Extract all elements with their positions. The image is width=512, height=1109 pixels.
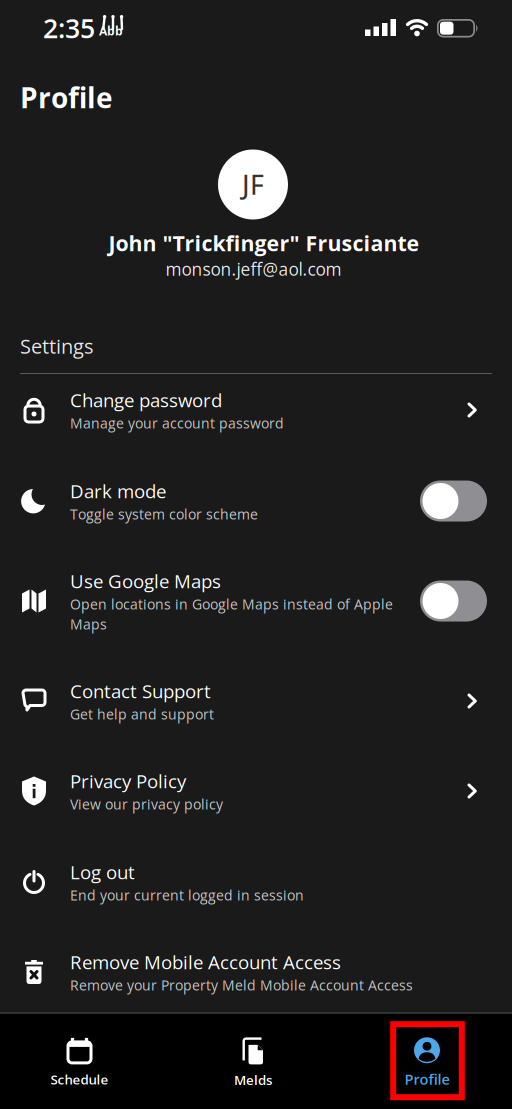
staticText: Remove your Property Meld Mobile Account… xyxy=(70,976,413,994)
button[interactable]: Melds xyxy=(234,1037,272,1089)
staticText: Open locations in Google Maps instead of… xyxy=(70,595,393,613)
staticText: Dark mode xyxy=(70,479,166,503)
staticText: Privacy Policy xyxy=(70,769,186,793)
staticText: Schedule xyxy=(50,1070,108,1088)
staticText: Contact Support xyxy=(70,679,211,703)
staticText: monson.jeff@aol.com xyxy=(165,257,341,280)
staticText: Profile xyxy=(20,79,113,116)
staticText: Profile xyxy=(404,1069,449,1089)
staticText: Get help and support xyxy=(70,705,214,723)
staticText: Melds xyxy=(234,1071,272,1089)
button[interactable]: Privacy Policy xyxy=(0,769,512,813)
staticText: JF xyxy=(242,167,264,202)
staticText: 2:35 xyxy=(43,10,95,46)
staticText: End your current logged in session xyxy=(70,886,304,904)
staticText: Abb xyxy=(99,23,123,39)
staticText: Manage your account password xyxy=(70,414,284,432)
staticText: Use Google Maps xyxy=(70,568,221,593)
staticText: Remove Mobile Account Access xyxy=(70,950,341,974)
staticText: Toggle system color scheme xyxy=(70,505,258,523)
button[interactable]: Log out xyxy=(0,860,512,904)
button[interactable]: Remove Mobile Account Access xyxy=(0,950,512,994)
button[interactable]: Change password xyxy=(0,388,512,432)
staticText: Maps xyxy=(70,615,107,633)
staticText: Settings xyxy=(20,333,94,359)
staticText: John "Trickfinger" Frusciante xyxy=(108,229,419,257)
staticText: Log out xyxy=(70,860,135,884)
button[interactable]: Use Google Maps switch xyxy=(420,580,487,621)
button[interactable]: Contact Support xyxy=(0,679,512,723)
button[interactable]: Dark mode switch xyxy=(420,480,487,521)
button[interactable]: Profile xyxy=(404,1037,449,1089)
staticText: View our privacy policy xyxy=(70,795,223,813)
button[interactable]: Schedule xyxy=(50,1038,108,1088)
staticText: Change password xyxy=(70,388,222,412)
